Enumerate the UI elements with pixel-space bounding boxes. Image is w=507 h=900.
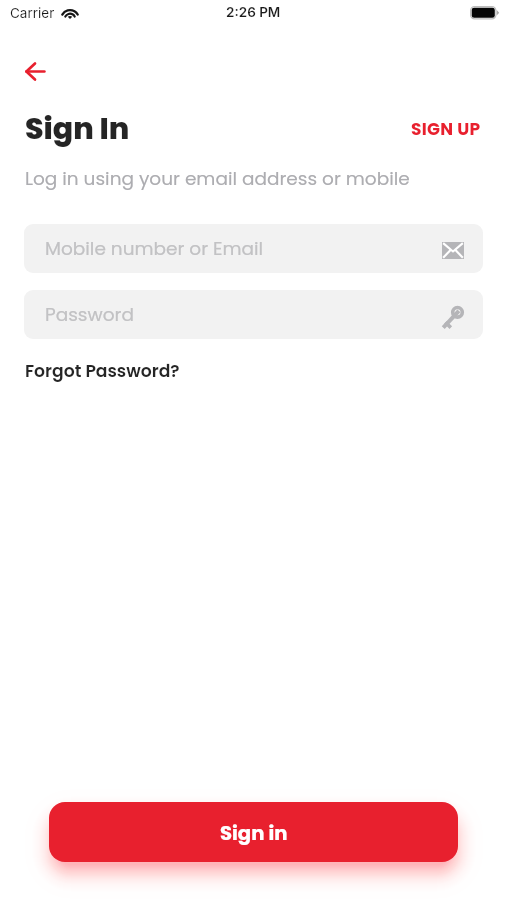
button[interactable]: Sign in	[49, 802, 458, 862]
button[interactable]: Mobile number or Email	[24, 224, 483, 273]
button[interactable]: SIGN UP	[401, 113, 491, 145]
button[interactable]: Forgot Password?	[21, 356, 185, 386]
button[interactable]: Password	[24, 290, 483, 339]
button[interactable]: Back	[12, 58, 60, 84]
staticText: Forgot Password?	[25, 359, 180, 383]
staticText: SIGN UP	[411, 117, 481, 141]
staticText: Password	[45, 302, 134, 328]
staticText: Log in using your email address or mobil…	[25, 166, 410, 192]
staticText: 2:26 PM	[226, 4, 281, 20]
staticText: Carrier	[10, 5, 55, 21]
staticText: Sign in	[220, 819, 288, 846]
staticText: Mobile number or Email	[45, 236, 264, 262]
staticText: Sign In	[25, 108, 130, 150]
